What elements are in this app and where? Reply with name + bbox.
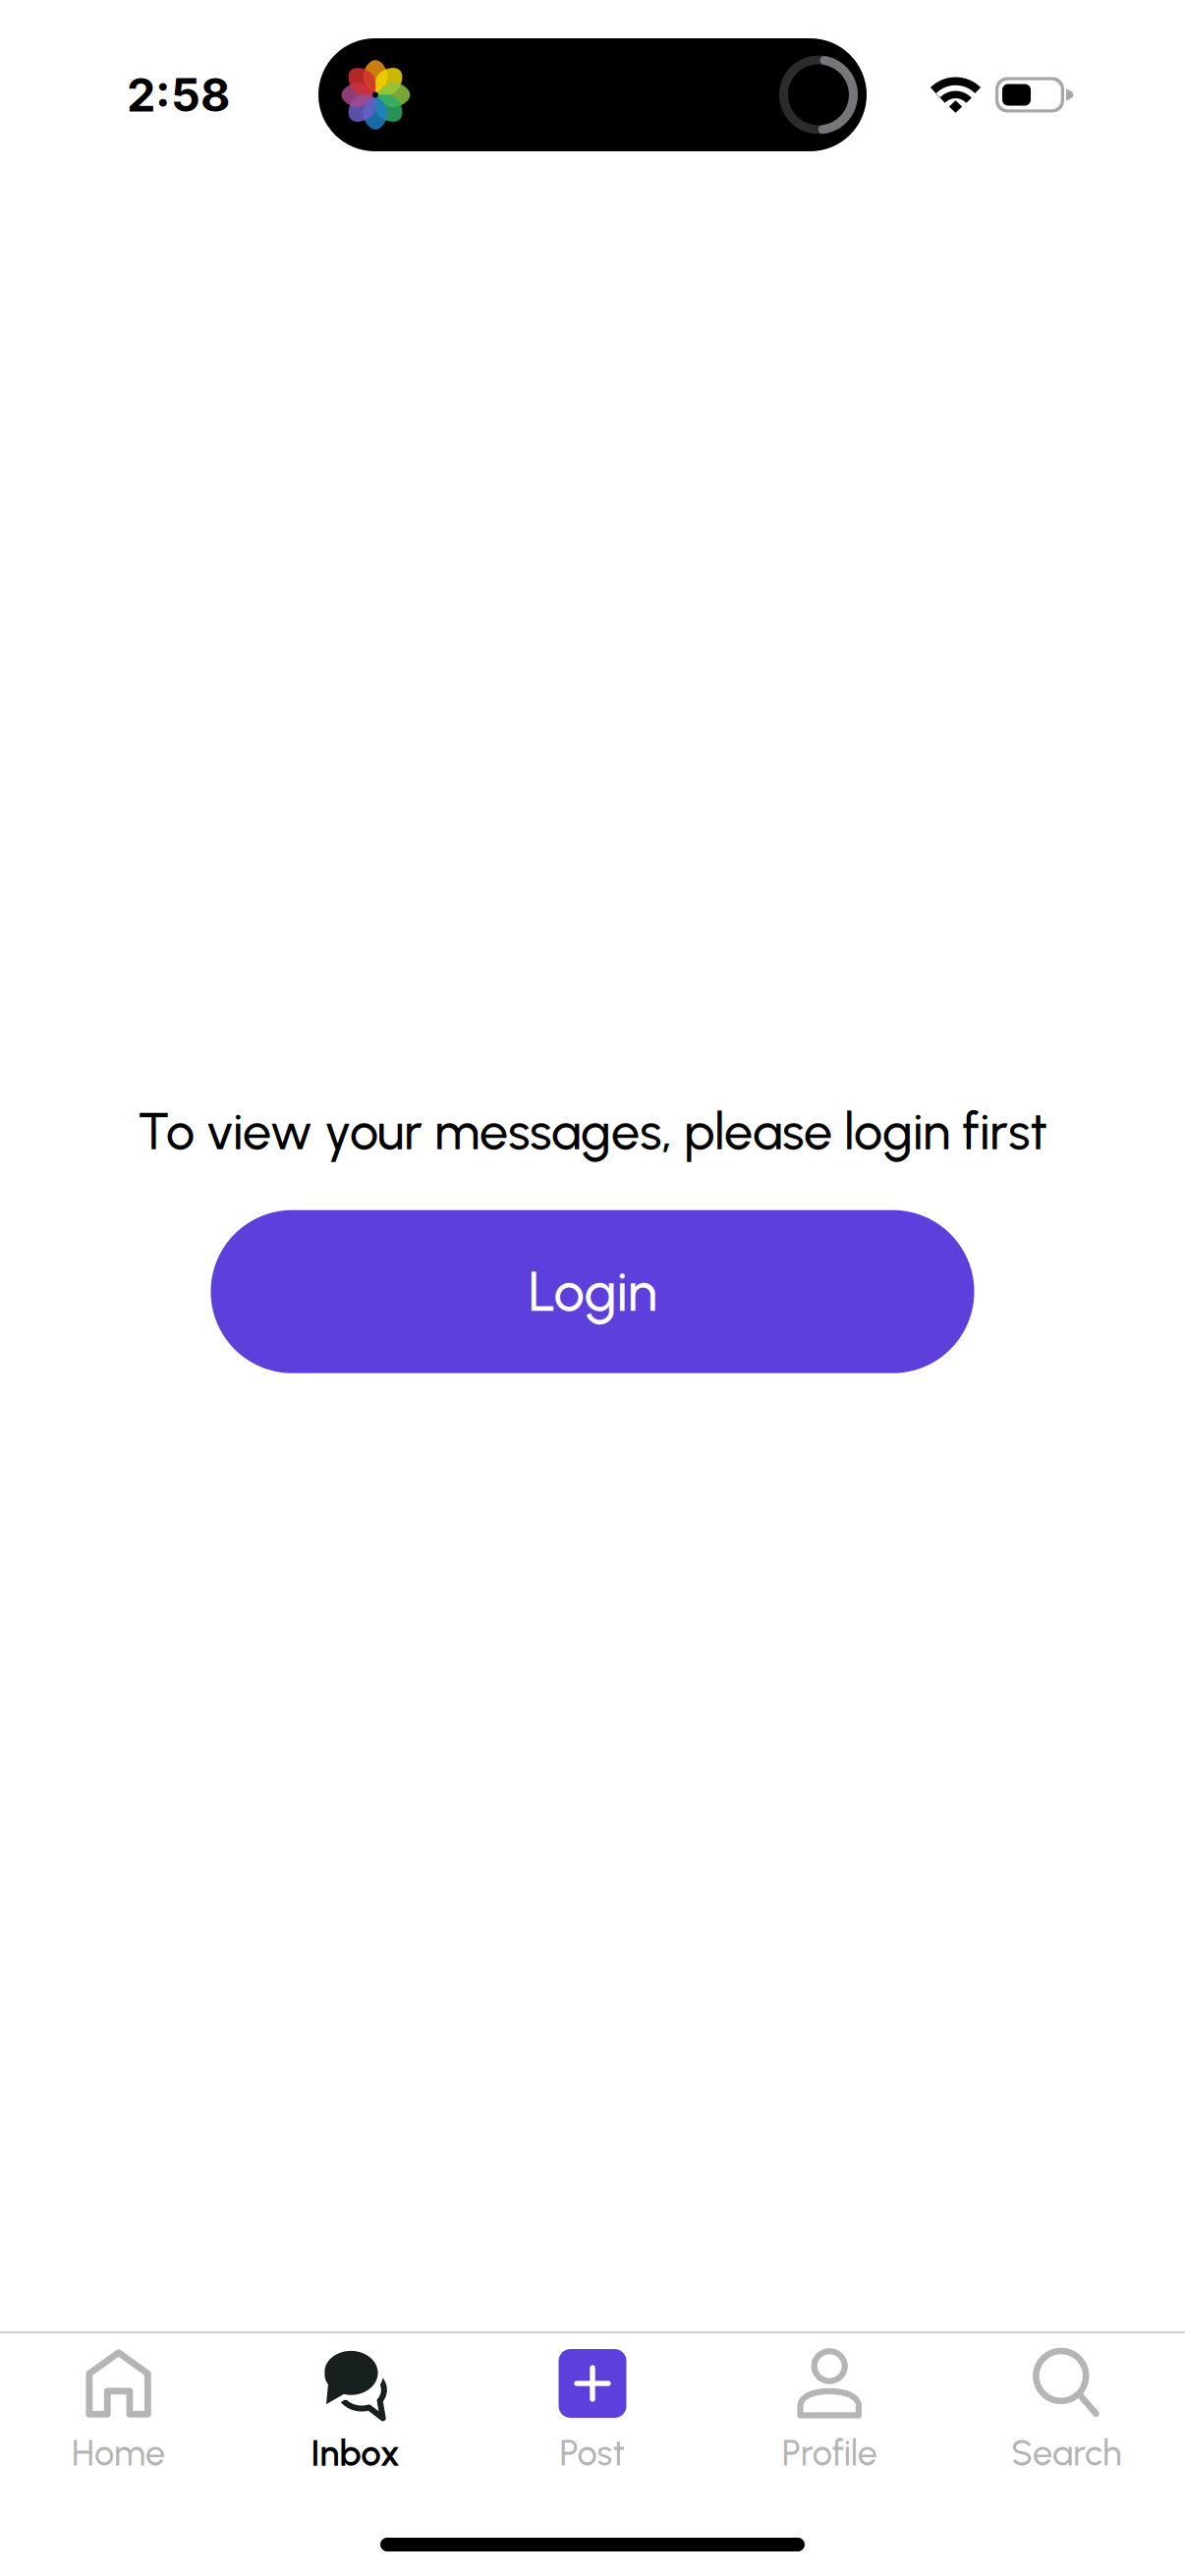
button[interactable]: Post [474, 2333, 711, 2488]
staticText: Search [1011, 2432, 1122, 2474]
staticText: Login [528, 1259, 657, 1325]
button[interactable]: Home [0, 2333, 237, 2488]
button[interactable]: Login [211, 1210, 974, 1373]
button[interactable]: Inbox [237, 2333, 474, 2488]
button[interactable]: Profile [711, 2333, 948, 2488]
staticText: Post [560, 2432, 625, 2474]
staticText: Home [72, 2432, 165, 2474]
staticText: Inbox [311, 2432, 400, 2475]
staticText: 2:58 [127, 67, 230, 123]
staticText: To view your messages, please login firs… [138, 1101, 1047, 1162]
button[interactable]: Search [948, 2333, 1185, 2488]
staticText: Profile [782, 2432, 877, 2474]
